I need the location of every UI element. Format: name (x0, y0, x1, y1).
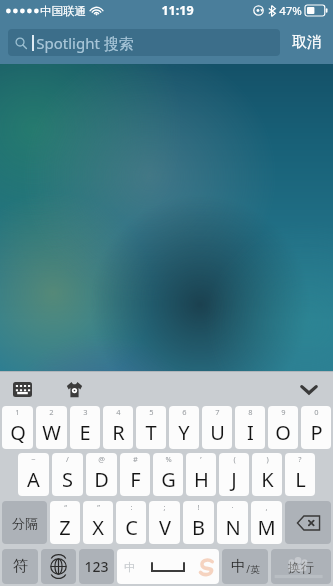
staticText: L (295, 466, 306, 493)
staticText: 5 (149, 407, 154, 417)
staticText: W (42, 419, 61, 446)
staticText: 2 (49, 407, 54, 417)
button[interactable]: : (116, 501, 146, 544)
button[interactable]: 7 (202, 406, 232, 449)
button[interactable]: Backspace (285, 501, 331, 544)
staticText: · (231, 502, 234, 512)
staticText: ; (163, 502, 166, 512)
staticText: 4 (116, 407, 121, 417)
staticText: Q (10, 419, 26, 446)
staticText: 符 (13, 557, 28, 576)
staticText: / (66, 454, 69, 464)
staticText: 7 (215, 407, 220, 417)
button[interactable]: 4 (103, 406, 133, 449)
button[interactable]: % (153, 453, 183, 496)
staticText: O (275, 419, 291, 446)
button[interactable]: 分隔 (2, 501, 47, 544)
button[interactable]: “ (50, 501, 80, 544)
staticText: 123 (84, 557, 109, 576)
button[interactable]: ’ (186, 453, 216, 496)
staticText: Y (178, 419, 190, 446)
staticText: M (257, 514, 276, 541)
button[interactable]: Hide keyboard (295, 375, 323, 403)
button[interactable]: Switch keyboard (41, 549, 76, 584)
button[interactable]: ! (183, 501, 214, 544)
staticText: E (79, 419, 91, 446)
staticText: 英 (250, 564, 260, 576)
staticText: C (125, 514, 138, 541)
staticText: 9 (281, 407, 286, 417)
staticText: 6 (182, 407, 187, 417)
button[interactable]: 9 (268, 406, 298, 449)
staticText: T (145, 419, 157, 446)
button[interactable]: · (217, 501, 248, 544)
staticText: 中 (231, 557, 246, 576)
staticText: 3 (83, 407, 88, 417)
button[interactable]: 中 (222, 549, 268, 584)
staticText: ~ (31, 454, 36, 464)
button[interactable]: ( (219, 453, 249, 496)
staticText: J (231, 466, 237, 493)
button[interactable]: / (52, 453, 83, 496)
staticText: ? (298, 454, 302, 464)
button[interactable]: 0 (301, 406, 331, 449)
button[interactable]: Space (117, 549, 219, 584)
staticText: / (246, 562, 250, 576)
button[interactable]: 符 (2, 549, 38, 584)
button[interactable]: Spotlight 搜索 (8, 29, 280, 56)
button[interactable]: , (251, 501, 282, 544)
staticText: P (310, 419, 323, 446)
staticText: H (194, 466, 209, 493)
button[interactable]: 5 (136, 406, 166, 449)
staticText: 47% (279, 3, 302, 19)
staticText: : (130, 502, 133, 512)
staticText: 0 (314, 407, 319, 417)
button[interactable]: 2 (36, 406, 67, 449)
button[interactable]: Skins (62, 377, 86, 401)
staticText: X (92, 514, 104, 541)
button[interactable]: ” (83, 501, 113, 544)
staticText: 分隔 (12, 515, 38, 531)
staticText: G (161, 466, 176, 493)
button[interactable]: 取消 (289, 28, 325, 57)
button[interactable]: # (120, 453, 150, 496)
button[interactable]: ~ (18, 453, 49, 496)
staticText: U (210, 419, 225, 446)
staticText: Spotlight 搜索 (36, 33, 134, 53)
staticText: 中国联通 (40, 4, 86, 18)
button[interactable]: ) (252, 453, 282, 496)
staticText: A (27, 466, 40, 493)
staticText: % (165, 454, 172, 464)
staticText: 中 (124, 560, 135, 574)
staticText: ! (197, 502, 200, 512)
button[interactable]: @ (86, 453, 117, 496)
staticText: ’ (200, 454, 202, 464)
staticText: Z (59, 514, 71, 541)
staticText: ” (97, 502, 100, 512)
button[interactable]: ; (149, 501, 180, 544)
staticText: ) (266, 454, 269, 464)
staticText: B (192, 514, 205, 541)
staticText: 换行 (288, 559, 314, 575)
button[interactable]: 6 (169, 406, 199, 449)
button[interactable]: 3 (70, 406, 100, 449)
staticText: R (112, 419, 125, 446)
button[interactable]: Keyboard settings (10, 377, 34, 401)
staticText: , (265, 502, 268, 512)
staticText: 1 (15, 407, 20, 417)
button[interactable]: 123 (79, 549, 114, 584)
staticText: ( (233, 454, 236, 464)
staticText: N (225, 514, 241, 541)
staticText: 11:19 (161, 2, 194, 19)
button[interactable]: ? (285, 453, 315, 496)
staticText: D (94, 466, 109, 493)
button[interactable]: 8 (235, 406, 265, 449)
staticText: # (133, 454, 138, 464)
button[interactable]: 换行 (271, 549, 331, 584)
button[interactable]: 1 (2, 406, 33, 449)
staticText: V (159, 514, 171, 541)
staticText: “ (64, 502, 67, 512)
staticText: F (130, 466, 141, 493)
staticText: 取消 (292, 33, 322, 52)
staticText: @ (98, 454, 105, 464)
